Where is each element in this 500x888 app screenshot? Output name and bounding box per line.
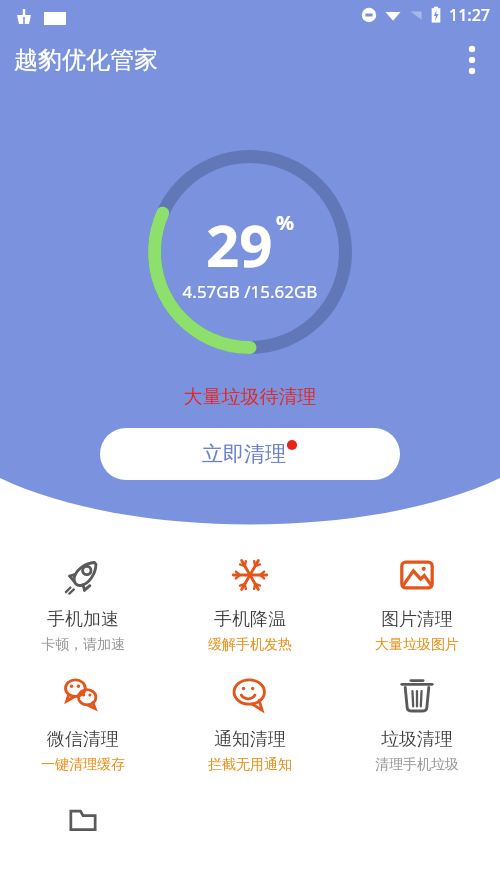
button[interactable]: 手机加速 <box>0 552 166 658</box>
staticText: 手机降温 <box>214 608 286 631</box>
staticText: 手机加速 <box>47 608 119 631</box>
staticText: 29 <box>206 205 273 284</box>
staticText: 立即清理 <box>202 441 286 467</box>
staticText: 缓解手机发热 <box>208 636 292 654</box>
staticText: 一键清理缓存 <box>41 756 125 774</box>
button[interactable]: 图片清理 <box>333 552 500 658</box>
button[interactable]: 立即清理 <box>100 428 400 480</box>
staticText: 图片清理 <box>381 608 453 631</box>
staticText: 微信清理 <box>47 728 119 751</box>
button[interactable]: More options <box>452 36 500 84</box>
staticText: 大量垃圾图片 <box>375 636 459 654</box>
staticText: % <box>276 209 295 236</box>
button[interactable]: 通知清理 <box>166 672 333 778</box>
staticText: 11:27 <box>449 4 490 26</box>
staticText: 卡顿，请加速 <box>41 636 125 654</box>
button[interactable]: 垃圾清理 <box>333 672 500 778</box>
staticText: 4.57GB /15.62GB <box>0 280 500 303</box>
staticText: 大量垃圾待清理 <box>0 385 500 409</box>
staticText: 拦截无用通知 <box>208 756 292 774</box>
button[interactable]: 微信清理 <box>0 672 166 778</box>
staticText: 越豹优化管家 <box>14 45 158 75</box>
staticText: 通知清理 <box>214 728 286 751</box>
staticText: 清理手机垃圾 <box>375 756 459 774</box>
button[interactable]: 手机降温 <box>166 552 333 658</box>
button[interactable]: File manager <box>55 792 111 848</box>
staticText: 垃圾清理 <box>381 728 453 751</box>
